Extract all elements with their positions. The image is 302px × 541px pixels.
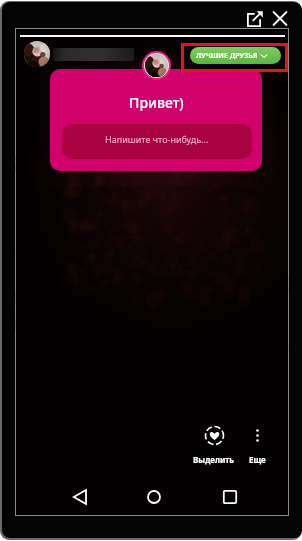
staticText: Напишите что-нибудь... [105, 133, 209, 145]
button[interactable]: ЛУЧШИЕ ДРУЗЬЯ [190, 47, 281, 64]
button[interactable]: Recent apps [218, 485, 242, 509]
staticText: Выделить [193, 454, 235, 465]
staticText: Еще [249, 454, 266, 465]
button[interactable]: Напишите что-нибудь... [62, 124, 252, 159]
staticText: Привет) [129, 93, 184, 112]
staticText: ЛУЧШИЕ ДРУЗЬЯ [196, 51, 258, 61]
button[interactable]: Еще [235, 425, 280, 469]
button[interactable]: Выделить [190, 425, 238, 469]
button[interactable]: Close [272, 11, 288, 26]
button[interactable]: Story author [145, 54, 168, 77]
button[interactable]: Profile photo [24, 41, 50, 67]
button[interactable]: Back [68, 485, 92, 509]
button[interactable] [53, 48, 134, 61]
button[interactable]: Home [142, 485, 166, 509]
button[interactable]: Open in new window [247, 11, 263, 27]
